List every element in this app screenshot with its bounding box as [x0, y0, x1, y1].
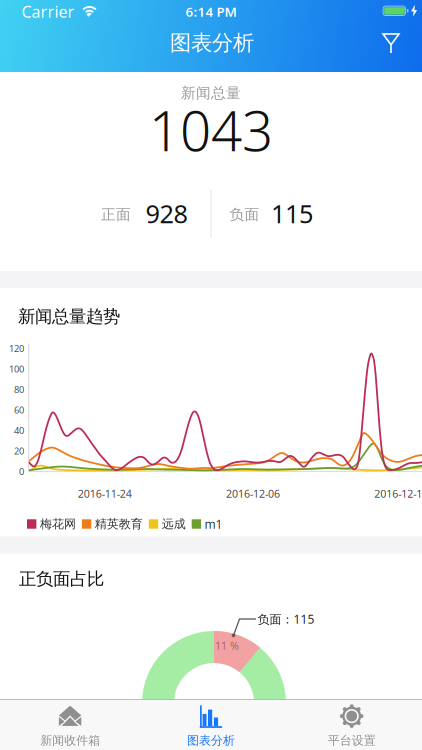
button[interactable]: 图表分析: [141, 700, 281, 750]
staticText: 远成: [162, 517, 186, 531]
staticText: 2016-12-18: [374, 486, 422, 501]
staticText: 11 %: [215, 638, 239, 653]
staticText: 0: [19, 465, 24, 478]
staticText: 精英教育: [95, 517, 143, 531]
staticText: 正面: [101, 205, 131, 223]
staticText: 60: [14, 404, 24, 416]
staticText: m1: [205, 516, 223, 532]
staticText: 正负面占比: [19, 568, 104, 590]
staticText: 新闻收件箱: [40, 733, 100, 748]
staticText: 平台设置: [328, 733, 376, 748]
staticText: 100: [9, 363, 24, 375]
button[interactable]: 筛选: [379, 31, 403, 55]
staticText: 80: [14, 383, 24, 396]
staticText: 负面: [229, 205, 259, 223]
staticText: 120: [9, 342, 24, 355]
staticText: 2016-12-06: [226, 486, 280, 501]
button[interactable]: 新闻收件箱: [0, 700, 140, 750]
staticText: 20: [14, 445, 24, 457]
staticText: 6:14 PM: [185, 3, 236, 20]
staticText: 1043: [149, 94, 273, 166]
staticText: 新闻总量: [181, 84, 241, 102]
staticText: 负面：115: [257, 611, 314, 627]
staticText: 928: [145, 197, 187, 230]
staticText: 图表分析: [187, 733, 235, 748]
staticText: 新闻总量趋势: [18, 306, 120, 327]
staticText: 梅花网: [40, 517, 76, 531]
staticText: Carrier: [21, 1, 74, 22]
button[interactable]: 平台设置: [282, 700, 422, 750]
staticText: 40: [14, 424, 24, 437]
staticText: 115: [271, 197, 313, 230]
staticText: 2016-11-24: [78, 486, 132, 501]
staticText: 图表分析: [170, 30, 254, 56]
